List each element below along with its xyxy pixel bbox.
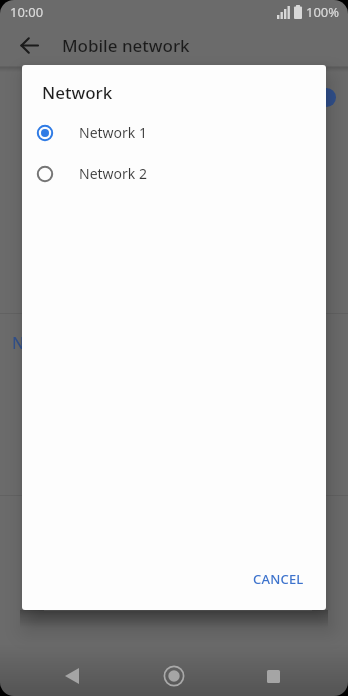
button[interactable] [152, 654, 196, 696]
button[interactable]: Network 1 [22, 117, 326, 148]
staticText: 10:00 [10, 3, 44, 21]
button[interactable] [50, 654, 94, 696]
staticText: Network 1 [79, 123, 147, 142]
staticText: CANCEL [253, 570, 304, 588]
button[interactable]: Network 2 [22, 158, 326, 189]
staticText: Mobile network [62, 34, 190, 57]
staticText: 100% [306, 3, 340, 21]
button[interactable] [251, 654, 295, 696]
button[interactable] [16, 32, 42, 58]
button[interactable]: CANCEL [245, 562, 312, 596]
staticText: N [12, 332, 25, 354]
staticText: Network [42, 81, 113, 104]
staticText: Network 2 [79, 164, 147, 183]
